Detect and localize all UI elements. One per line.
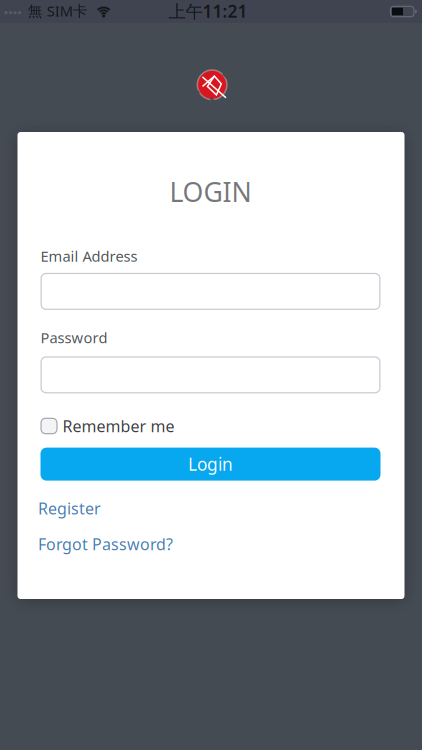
button[interactable]: Email Address [40, 273, 380, 310]
staticText: Email Address [40, 246, 137, 266]
staticText: 上午11:21 [168, 0, 247, 22]
staticText: Login [188, 453, 233, 476]
button[interactable]: Remember me [40, 415, 174, 437]
staticText: Remember me [62, 415, 174, 437]
button[interactable]: Register [38, 498, 101, 519]
button[interactable]: Login [40, 448, 380, 481]
button[interactable]: Password [40, 356, 380, 393]
staticText: Forgot Password? [38, 533, 173, 555]
staticText: Password [40, 328, 107, 347]
staticText: Register [38, 498, 101, 519]
staticText: LOGIN [169, 174, 251, 209]
button[interactable]: Forgot Password? [38, 533, 173, 555]
staticText: 無 SIM卡 [28, 1, 88, 20]
